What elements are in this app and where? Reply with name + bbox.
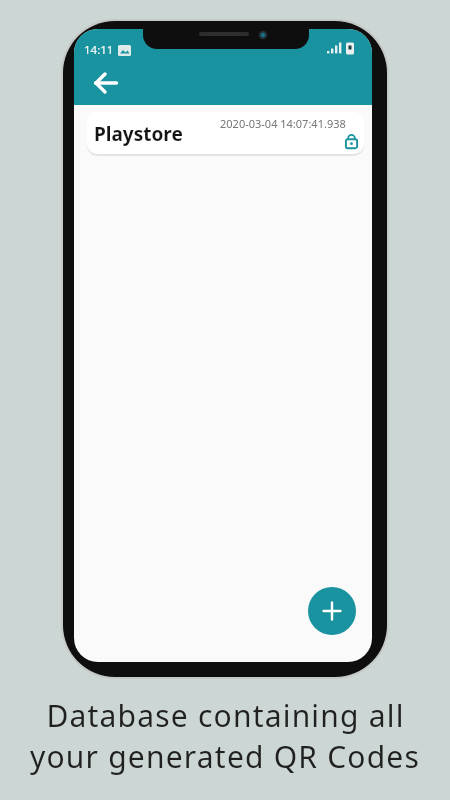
- button[interactable]: Playstore: [87, 112, 364, 154]
- staticText: Playstore: [94, 121, 183, 147]
- button[interactable]: [86, 63, 126, 103]
- staticText: 2020-03-04 14:07:41.938: [220, 116, 346, 131]
- staticText: Database containing all: [46, 695, 405, 736]
- button[interactable]: [308, 587, 356, 635]
- staticText: your generated QR Codes: [30, 736, 420, 777]
- staticText: 14:11: [84, 42, 114, 58]
